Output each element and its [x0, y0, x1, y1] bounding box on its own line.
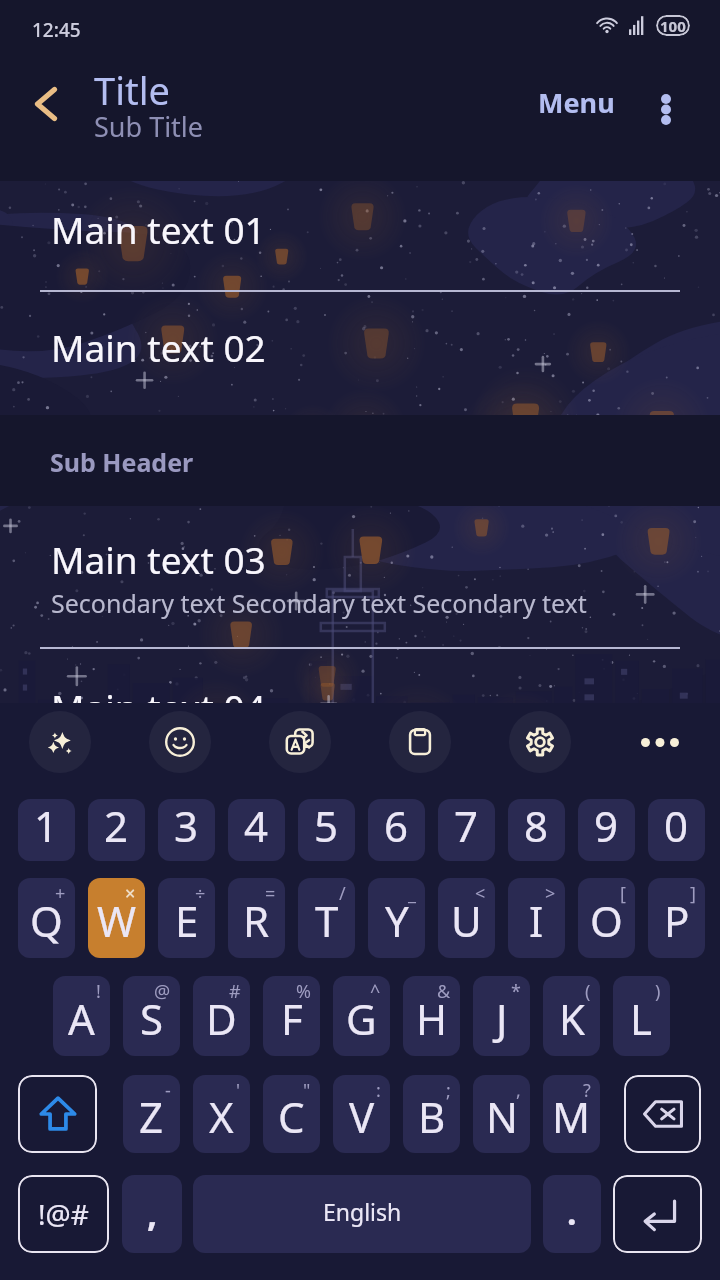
- button[interactable]: Enter: [613, 1175, 702, 1253]
- staticText: T: [315, 892, 339, 949]
- staticText: J: [496, 990, 508, 1047]
- staticText: H: [416, 990, 448, 1047]
- button[interactable]: [: [578, 878, 635, 958]
- button[interactable]: Magic: [0, 703, 120, 799]
- button[interactable]: #: [193, 976, 250, 1056]
- staticText: G: [346, 990, 377, 1047]
- staticText: ,: [147, 1188, 158, 1237]
- button[interactable]: ×: [88, 878, 145, 958]
- staticText: Z: [139, 1088, 164, 1145]
- button[interactable]: !@#: [18, 1175, 109, 1253]
- staticText: 4: [244, 799, 269, 854]
- staticText: <: [475, 881, 486, 906]
- button[interactable]: 8: [508, 799, 565, 861]
- staticText: Sub Title: [94, 108, 204, 145]
- staticText: 3: [174, 799, 199, 854]
- staticText: 8: [524, 799, 549, 854]
- staticText: +: [55, 881, 66, 906]
- staticText: %: [296, 979, 311, 1004]
- staticText: M: [552, 1088, 591, 1145]
- button[interactable]: Main text 02: [0, 292, 720, 401]
- button[interactable]: %: [263, 976, 320, 1056]
- staticText: L: [630, 990, 653, 1047]
- button[interactable]: +: [18, 878, 75, 958]
- staticText: V: [349, 1088, 375, 1145]
- button[interactable]: ,: [473, 1075, 530, 1153]
- staticText: 7: [454, 799, 479, 854]
- button[interactable]: Clipboard: [360, 703, 480, 799]
- button[interactable]: ): [613, 976, 670, 1056]
- button[interactable]: More options: [635, 78, 697, 140]
- button[interactable]: Shift: [18, 1075, 97, 1153]
- button[interactable]: 2: [88, 799, 145, 861]
- button[interactable]: Main text 03: [0, 506, 720, 648]
- button[interactable]: English: [193, 1175, 531, 1253]
- button[interactable]: ]: [648, 878, 705, 958]
- staticText: [: [620, 881, 626, 906]
- staticText: Main text 03: [51, 534, 266, 584]
- staticText: !: [96, 979, 101, 1004]
- staticText: :: [376, 1078, 381, 1103]
- button[interactable]: 9: [578, 799, 635, 861]
- staticText: P: [664, 892, 690, 949]
- staticText: Main text 04: [51, 682, 266, 710]
- button[interactable]: ^: [333, 976, 390, 1056]
- staticText: I: [529, 892, 544, 949]
- button[interactable]: Back: [14, 72, 78, 136]
- staticText: .: [567, 1189, 577, 1235]
- button[interactable]: >: [508, 878, 565, 958]
- button[interactable]: ;: [403, 1075, 460, 1153]
- staticText: 2: [104, 799, 129, 854]
- button[interactable]: 1: [18, 799, 75, 861]
- button[interactable]: ?: [543, 1075, 600, 1153]
- button[interactable]: -: [123, 1075, 180, 1153]
- button[interactable]: Translate: [240, 703, 360, 799]
- staticText: N: [486, 1088, 518, 1145]
- button[interactable]: ,: [122, 1175, 182, 1253]
- button[interactable]: Backspace: [624, 1075, 701, 1153]
- button[interactable]: (: [543, 976, 600, 1056]
- button[interactable]: *: [473, 976, 530, 1056]
- button[interactable]: !: [53, 976, 110, 1056]
- staticText: ;: [446, 1078, 451, 1103]
- button[interactable]: ': [193, 1075, 250, 1153]
- staticText: Title: [94, 64, 170, 116]
- staticText: >: [545, 881, 556, 906]
- button[interactable]: 4: [228, 799, 285, 861]
- button[interactable]: 6: [368, 799, 425, 861]
- staticText: E: [175, 892, 199, 949]
- button[interactable]: _: [368, 878, 425, 958]
- button[interactable]: @: [123, 976, 180, 1056]
- staticText: Menu: [538, 84, 615, 121]
- button[interactable]: Menu: [526, 74, 627, 131]
- button[interactable]: .: [543, 1175, 601, 1253]
- staticText: 12:45: [32, 17, 81, 43]
- staticText: ?: [583, 1078, 591, 1103]
- staticText: English: [323, 1196, 402, 1227]
- staticText: Sub Header: [50, 445, 194, 479]
- button[interactable]: More: [600, 703, 720, 799]
- button[interactable]: 0: [648, 799, 705, 861]
- button[interactable]: =: [228, 878, 285, 958]
- button[interactable]: /: [298, 878, 355, 958]
- button[interactable]: <: [438, 878, 495, 958]
- button[interactable]: Emoji: [120, 703, 240, 799]
- staticText: _: [408, 881, 416, 906]
- button[interactable]: 7: [438, 799, 495, 861]
- staticText: A: [68, 990, 95, 1047]
- button[interactable]: Main text 01: [0, 181, 720, 290]
- button[interactable]: 3: [158, 799, 215, 861]
- button[interactable]: ÷: [158, 878, 215, 958]
- button[interactable]: 5: [298, 799, 355, 861]
- staticText: R: [243, 892, 270, 949]
- staticText: W: [97, 892, 137, 949]
- button[interactable]: Settings: [480, 703, 600, 799]
- button[interactable]: ": [263, 1075, 320, 1153]
- staticText: Q: [30, 892, 63, 949]
- staticText: 9: [594, 799, 619, 854]
- staticText: Main text 01: [51, 204, 266, 254]
- button[interactable]: &: [403, 976, 460, 1056]
- staticText: D: [206, 990, 237, 1047]
- button[interactable]: :: [333, 1075, 390, 1153]
- staticText: ^: [370, 979, 381, 1004]
